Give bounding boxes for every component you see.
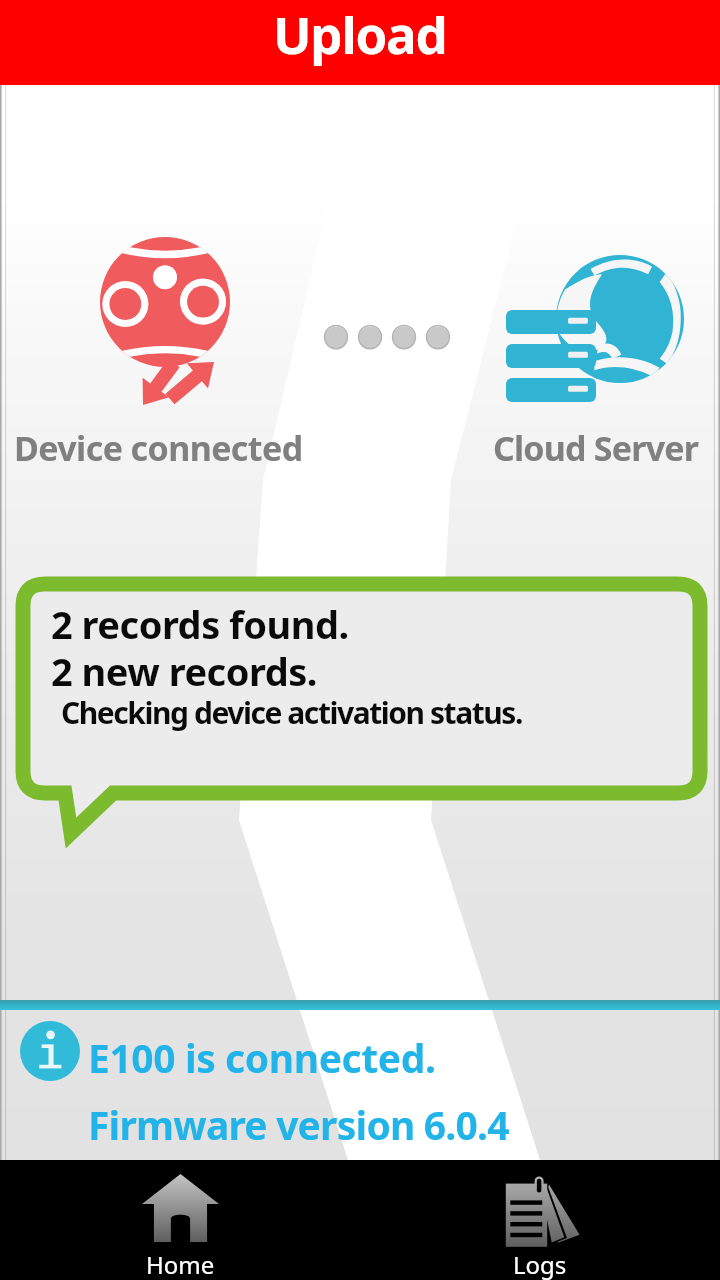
staticText: Home <box>146 1248 215 1280</box>
staticText: Logs <box>513 1248 567 1280</box>
staticText: 2 new records. <box>51 645 317 697</box>
staticText: Cloud Server <box>493 425 699 471</box>
staticText: Checking device activation status. <box>61 692 522 733</box>
staticText: Firmware version 6.0.4 <box>88 1098 509 1151</box>
staticText: Upload <box>273 0 447 68</box>
button[interactable]: Upload <box>0 0 720 85</box>
button[interactable]: Logs <box>360 1160 720 1280</box>
button[interactable]: Home <box>0 1160 360 1280</box>
staticText: Device connected <box>14 425 303 471</box>
staticText: 2 records found. <box>51 598 349 650</box>
staticText: E100 is connected. <box>88 1031 436 1084</box>
